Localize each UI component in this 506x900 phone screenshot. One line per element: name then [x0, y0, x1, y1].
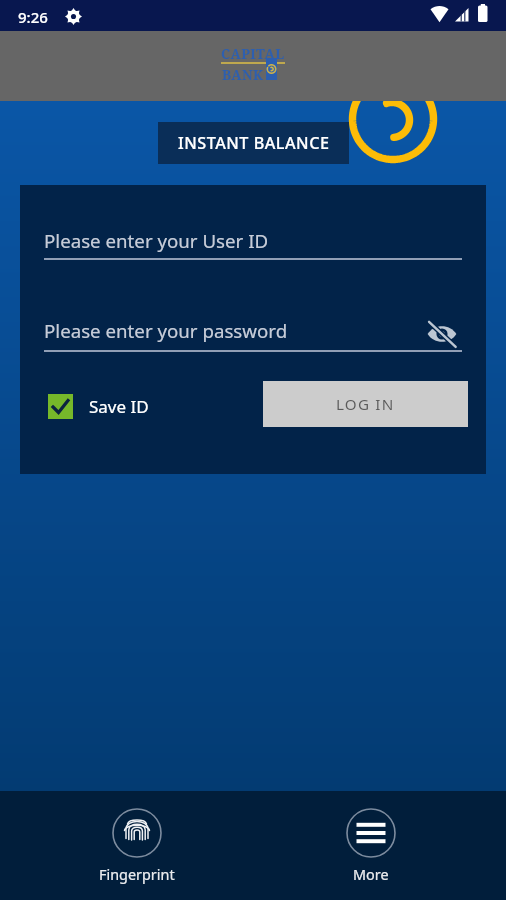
- staticText: BANK: [222, 65, 264, 84]
- staticText: Please enter your User ID: [44, 228, 269, 253]
- button[interactable]: Show password: [424, 316, 460, 352]
- button[interactable]: More: [316, 808, 426, 885]
- staticText: Fingerprint: [99, 865, 175, 885]
- button[interactable]: LOG IN: [263, 381, 468, 427]
- button[interactable]: INSTANT BALANCE: [158, 122, 349, 164]
- staticText: CAPITAL: [221, 44, 285, 63]
- button[interactable]: Save ID: [44, 388, 149, 424]
- staticText: 9:26: [18, 7, 48, 27]
- staticText: LOG IN: [336, 394, 395, 415]
- staticText: More: [353, 865, 389, 885]
- staticText: INSTANT BALANCE: [178, 132, 330, 154]
- button[interactable]: Fingerprint: [82, 808, 192, 885]
- staticText: Save ID: [89, 395, 149, 418]
- staticText: Please enter your password: [44, 318, 288, 343]
